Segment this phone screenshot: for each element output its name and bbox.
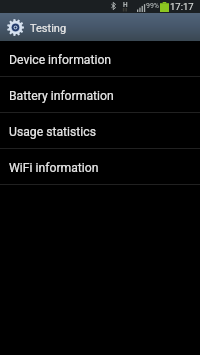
staticText: WiFi information [9,161,99,175]
staticText: Battery information [9,89,114,103]
staticText: H [123,1,128,9]
button[interactable]: WiFi information [0,149,200,185]
staticText: 17:17 [170,1,194,12]
staticText: 99% [146,2,159,10]
button[interactable]: Usage statistics [0,113,200,149]
button[interactable]: Battery information [0,77,200,113]
staticText: Testing [30,22,67,35]
button[interactable]: Device information [0,41,200,77]
staticText: Usage statistics [9,125,96,139]
staticText: Device information [9,53,112,67]
